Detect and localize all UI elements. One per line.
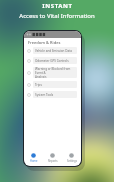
staticText: System Tools (35, 93, 54, 97)
other: Home (31, 153, 36, 158)
staticText: Vehicle and Emission Data (35, 49, 72, 53)
button[interactable]: Odometer GPS Controls (33, 57, 77, 64)
button[interactable]: Settings (62, 150, 81, 166)
button[interactable]: Warning or Blocked from Event & Analysis (33, 67, 77, 78)
button[interactable]: Reports (43, 150, 62, 166)
other: Settings (69, 153, 74, 158)
staticText: Settings (67, 159, 77, 163)
staticText: Home (30, 159, 38, 163)
staticText: Warning or Blocked from Event & Analysis (35, 67, 75, 78)
staticText: Trips (35, 83, 42, 87)
button[interactable]: Trips (33, 81, 77, 88)
staticText: Odometer GPS Controls (35, 59, 69, 63)
staticText: Reports (48, 159, 58, 163)
button[interactable]: Home (24, 150, 43, 166)
button[interactable]: Vehicle and Emission Data (33, 47, 77, 54)
button[interactable]: System Tools (33, 91, 77, 98)
staticText: Freedom & Rides (28, 40, 61, 45)
other: Reports (50, 153, 55, 158)
staticText: Access to Vital Information (19, 12, 95, 20)
staticText: INSTANT (42, 2, 73, 10)
